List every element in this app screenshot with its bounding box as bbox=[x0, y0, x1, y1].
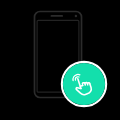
button[interactable]: Tap the screen bbox=[0, 0, 120, 120]
